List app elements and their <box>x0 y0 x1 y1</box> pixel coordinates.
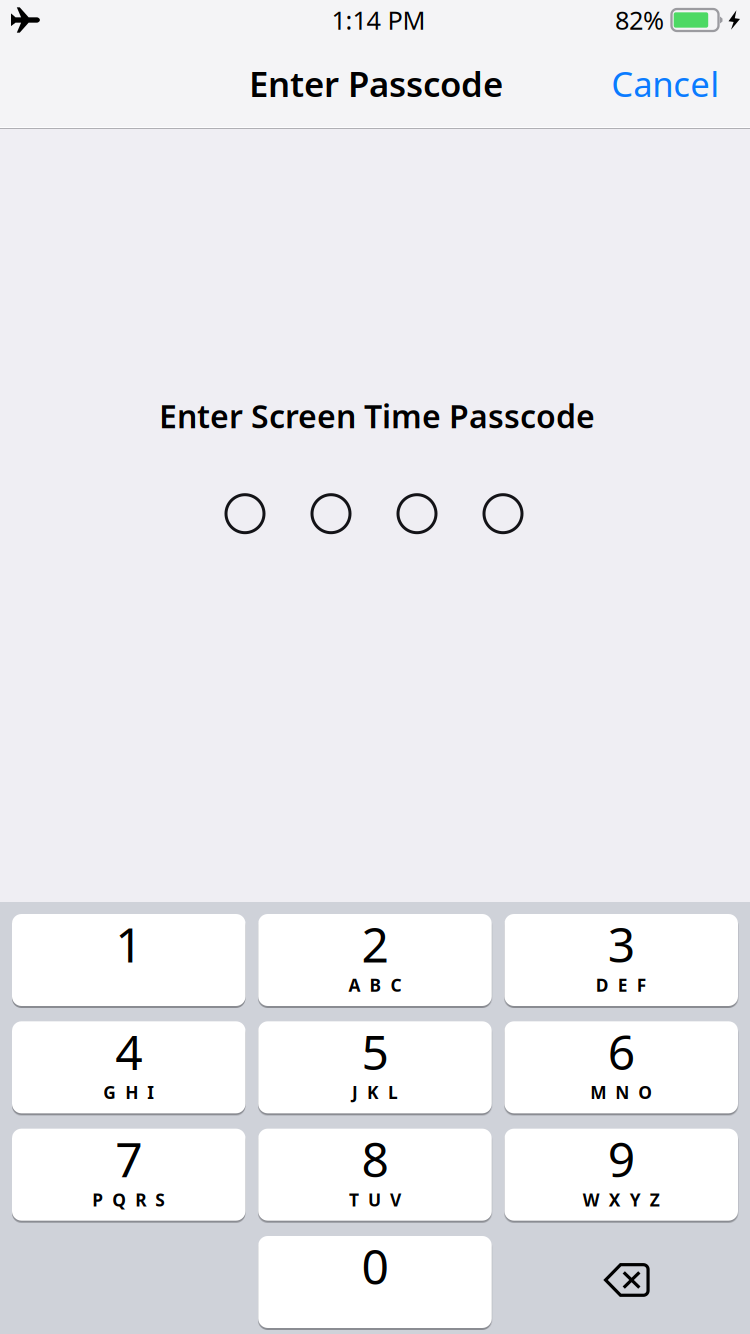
staticText: J K L <box>352 1081 398 1104</box>
staticText: 82% <box>615 3 664 37</box>
staticText: Enter Passcode <box>249 60 503 106</box>
button[interactable]: 2 <box>258 914 492 1006</box>
staticText: P Q R S <box>92 1188 165 1211</box>
staticText: A B C <box>348 973 401 996</box>
button[interactable]: 4 <box>12 1021 245 1113</box>
staticText: Cancel <box>611 60 719 106</box>
button[interactable]: 3 <box>504 914 738 1006</box>
staticText: 8 <box>361 1127 388 1190</box>
staticText: 1:14 PM <box>331 3 425 37</box>
staticText: M N O <box>590 1081 652 1104</box>
staticText: 0 <box>361 1234 388 1298</box>
button[interactable]: 5 <box>258 1021 492 1113</box>
staticText: T U V <box>349 1188 401 1211</box>
button[interactable]: Cancel <box>579 47 719 119</box>
staticText: G H I <box>103 1081 154 1104</box>
staticText: 7 <box>115 1127 142 1190</box>
button[interactable]: 0 <box>258 1236 492 1328</box>
staticText: D E F <box>596 973 647 996</box>
button[interactable]: 8 <box>258 1129 492 1221</box>
button[interactable]: 1 <box>12 914 245 1006</box>
button[interactable]: 7 <box>12 1129 245 1221</box>
staticText: W X Y Z <box>583 1188 660 1211</box>
staticText: 5 <box>361 1019 388 1083</box>
staticText: 9 <box>608 1127 635 1190</box>
staticText: 3 <box>608 912 635 976</box>
staticText: 2 <box>361 912 388 976</box>
staticText: 6 <box>608 1019 635 1083</box>
button[interactable]: Delete <box>504 1236 738 1328</box>
button[interactable]: 9 <box>504 1129 738 1221</box>
staticText: Enter Screen Time Passcode <box>159 395 595 437</box>
staticText: 4 <box>115 1019 142 1083</box>
button[interactable]: 6 <box>504 1021 738 1113</box>
staticText: 1 <box>115 912 142 976</box>
